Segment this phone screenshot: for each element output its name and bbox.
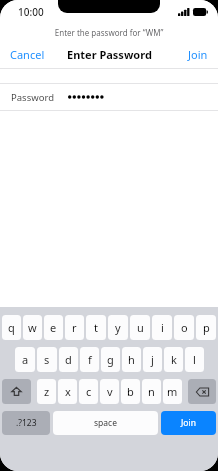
staticText: t	[94, 320, 98, 335]
button[interactable]: .?123	[2, 411, 50, 435]
button[interactable]: Delete	[188, 379, 216, 404]
staticText: g	[107, 352, 114, 367]
button[interactable]: m	[163, 379, 182, 404]
staticText: u	[137, 320, 144, 335]
staticText: h	[128, 352, 135, 367]
button[interactable]: c	[79, 379, 98, 404]
button[interactable]: d	[59, 347, 78, 372]
staticText: x	[65, 384, 71, 399]
button[interactable]: q	[2, 315, 21, 340]
staticText: i	[161, 320, 164, 335]
staticText: 10:00	[18, 5, 44, 19]
staticText: Password	[11, 91, 54, 104]
staticText: k	[171, 352, 177, 367]
button[interactable]: Cancel	[0, 44, 55, 65]
staticText: .?123	[16, 417, 37, 429]
staticText: m	[167, 384, 178, 399]
button[interactable]: x	[58, 379, 77, 404]
staticText: e	[50, 320, 57, 335]
button[interactable]: Join	[161, 411, 216, 435]
staticText: q	[8, 320, 15, 335]
staticText: y	[115, 320, 121, 335]
staticText: space	[94, 417, 117, 429]
staticText: l	[193, 352, 196, 367]
staticText: f	[88, 352, 92, 367]
button[interactable]: n	[142, 379, 161, 404]
button[interactable]: b	[121, 379, 140, 404]
staticText: Join	[188, 47, 208, 62]
staticText: v	[107, 384, 113, 399]
staticText: n	[148, 384, 155, 399]
staticText: Cancel	[10, 47, 45, 62]
button[interactable]: l	[185, 347, 204, 372]
staticText: c	[86, 384, 92, 399]
staticText: p	[203, 320, 210, 335]
staticText: Enter Password	[67, 47, 152, 62]
button[interactable]: r	[65, 315, 84, 340]
button[interactable]: w	[23, 315, 42, 340]
staticText: j	[151, 352, 154, 367]
staticText: z	[44, 384, 50, 399]
button[interactable]: Password	[0, 84, 218, 110]
button[interactable]: Join	[178, 44, 218, 65]
button[interactable]: h	[122, 347, 141, 372]
button[interactable]: y	[108, 315, 128, 340]
button[interactable]: z	[37, 379, 56, 404]
button[interactable]: f	[80, 347, 99, 372]
button[interactable]: g	[101, 347, 120, 372]
button[interactable]: i	[152, 315, 172, 340]
button[interactable]: a	[15, 347, 35, 372]
button[interactable]: e	[44, 315, 63, 340]
staticText: w	[28, 320, 37, 335]
staticText: s	[44, 352, 50, 367]
staticText: Enter the password for “WM”	[0, 27, 218, 38]
button[interactable]: Shift	[2, 379, 31, 404]
button[interactable]: u	[130, 315, 150, 340]
button[interactable]: t	[86, 315, 106, 340]
button[interactable]: k	[164, 347, 183, 372]
button[interactable]: j	[143, 347, 162, 372]
button[interactable]: s	[37, 347, 57, 372]
staticText: o	[181, 320, 188, 335]
button[interactable]: v	[100, 379, 119, 404]
staticText: b	[127, 384, 134, 399]
staticText: a	[22, 352, 29, 367]
button[interactable]: space	[53, 411, 158, 435]
button[interactable]: p	[196, 315, 216, 340]
staticText: r	[72, 320, 77, 335]
staticText: Join	[181, 417, 196, 429]
staticText: d	[65, 352, 72, 367]
button[interactable]: o	[174, 315, 194, 340]
